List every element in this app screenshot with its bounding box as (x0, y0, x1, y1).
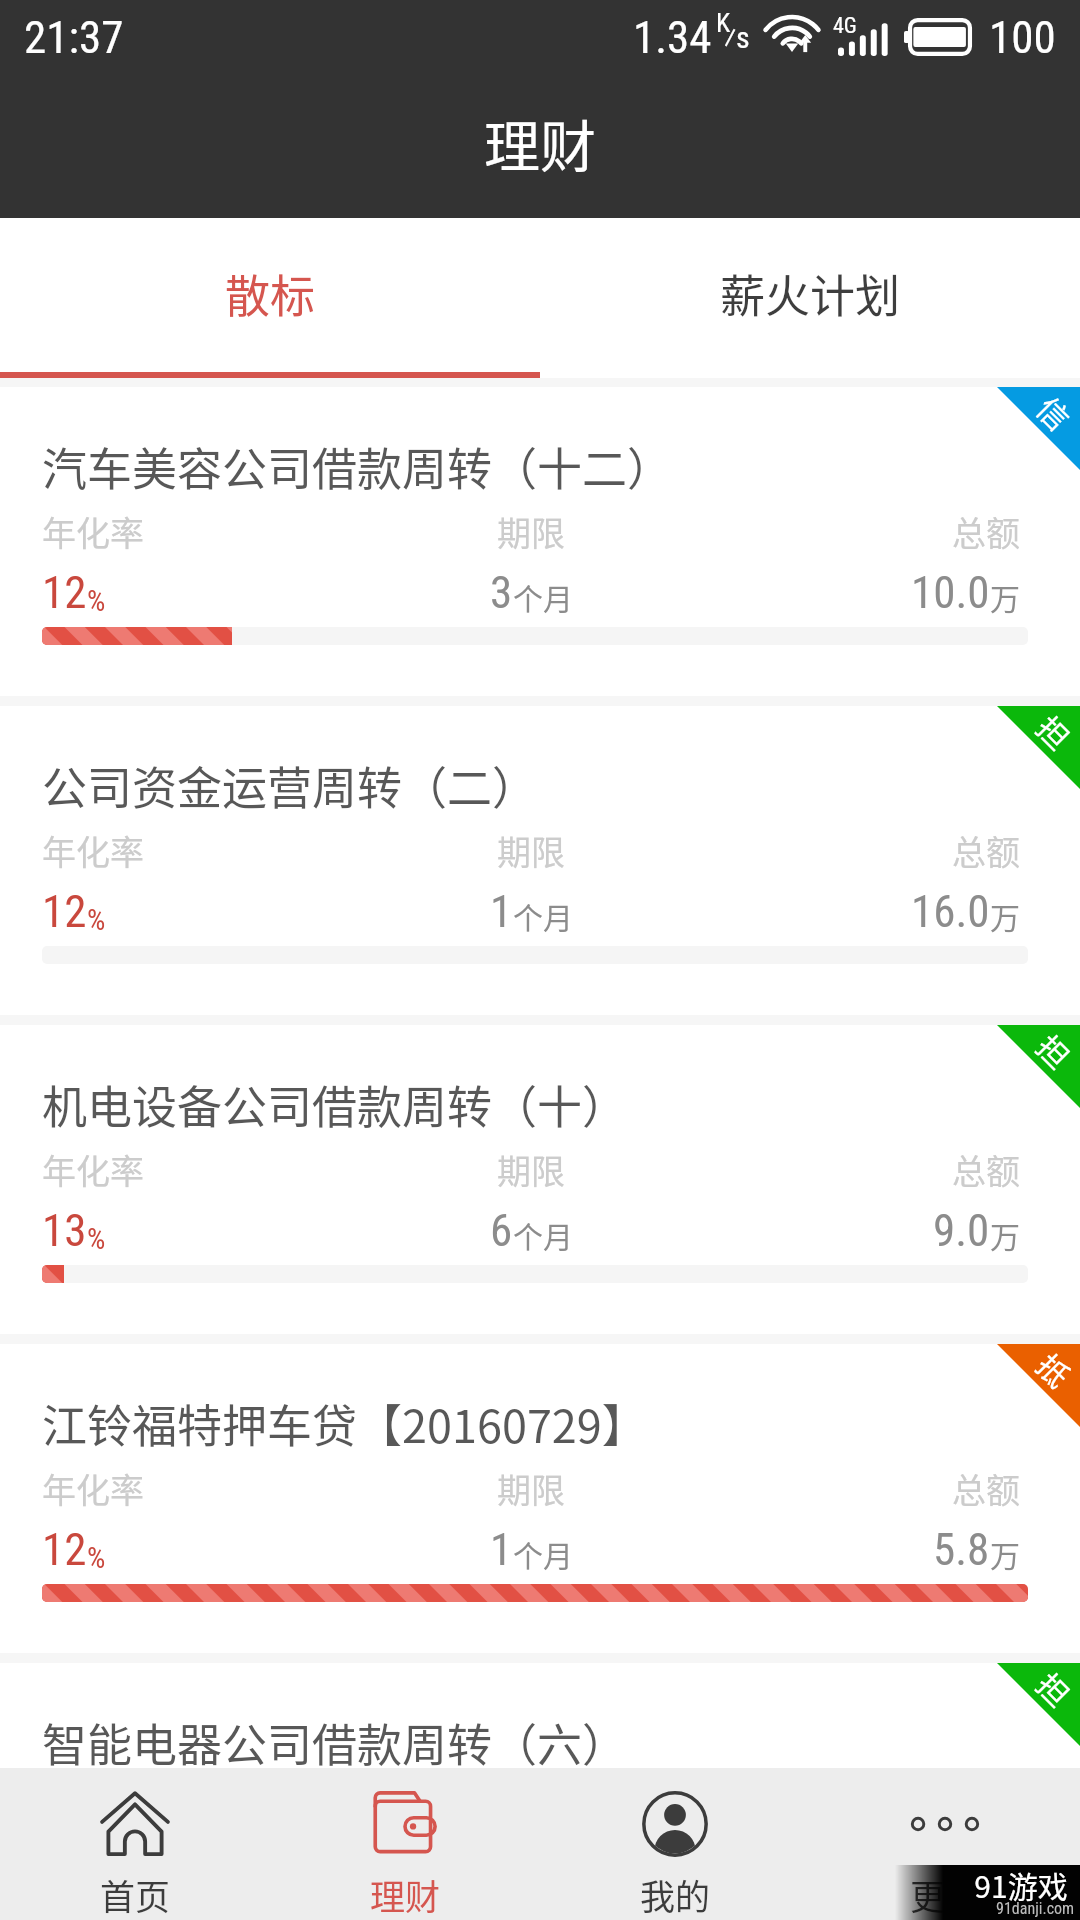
staticText: 总额 (952, 1145, 1020, 1194)
staticText: 16.0 (911, 885, 990, 938)
staticText: 个月 (513, 1532, 573, 1575)
staticText: 抵 (1028, 1343, 1080, 1396)
staticText: 理财 (370, 1869, 441, 1920)
staticText: 担 (1028, 1662, 1080, 1715)
staticText: 10.0 (911, 566, 990, 619)
staticText: % (87, 1541, 106, 1575)
staticText: 100 (989, 11, 1056, 64)
staticText: 12 (42, 566, 87, 619)
staticText: % (87, 1860, 106, 1894)
staticText: 总额 (952, 507, 1020, 556)
staticText: 年化率 (42, 1145, 144, 1194)
button[interactable]: 首页 (0, 1768, 270, 1920)
staticText: 总额 (952, 1783, 1020, 1832)
staticText: 信 (1028, 386, 1080, 439)
staticText: 8.0 (933, 1842, 990, 1895)
staticText: 万 (990, 575, 1020, 618)
staticText: 万 (990, 894, 1020, 937)
staticText: 更多 (910, 1869, 981, 1920)
staticText: 1.34 (633, 11, 712, 64)
button[interactable]: 薪火计划 (540, 218, 1080, 372)
staticText: 个月 (513, 1213, 573, 1256)
staticText: 期限 (497, 1464, 565, 1513)
button[interactable]: 江铃福特押车贷【20160729】 (0, 1344, 1080, 1653)
staticText: 期限 (497, 826, 565, 875)
staticText: 期限 (497, 1145, 565, 1194)
staticText: 21:37 (24, 11, 124, 64)
staticText: 总额 (952, 826, 1020, 875)
staticText: 薪火计划 (720, 261, 901, 326)
staticText: % (87, 584, 106, 618)
staticText: 91danji.com (996, 1899, 1075, 1918)
other: 我的 (640, 1789, 710, 1859)
button[interactable]: 更多 (810, 1768, 1080, 1920)
staticText: 13 (42, 1204, 87, 1257)
button[interactable]: 汽车美容公司借款周转（十二） (0, 387, 1080, 696)
staticText: 总额 (952, 1464, 1020, 1513)
staticText: 年化率 (42, 1464, 144, 1513)
staticText: 期限 (497, 507, 565, 556)
other: Battery (904, 18, 976, 56)
other: 更多 (910, 1789, 980, 1859)
staticText: 1 (490, 885, 513, 938)
staticText: 年化率 (42, 1783, 144, 1832)
staticText: % (87, 903, 106, 937)
staticText: 汽车美容公司借款周转（十二） (42, 434, 673, 499)
staticText: 万 (990, 1213, 1020, 1256)
button[interactable]: 理财 (270, 1768, 540, 1920)
button[interactable]: 公司资金运营周转（二） (0, 706, 1080, 1015)
button[interactable]: 我的 (540, 1768, 810, 1920)
staticText: 3 (490, 566, 513, 619)
staticText: 万 (990, 1851, 1020, 1894)
staticText: 我的 (640, 1869, 711, 1920)
staticText: 6 (490, 1204, 513, 1257)
staticText: 5.8 (933, 1523, 990, 1576)
staticText: 年化率 (42, 826, 144, 875)
staticText: 担 (1028, 705, 1080, 758)
staticText: 12 (42, 885, 87, 938)
other: 首页 (100, 1789, 170, 1859)
staticText: 9.0 (933, 1204, 990, 1257)
staticText: ⁄s (724, 20, 750, 55)
staticText: 万 (990, 1532, 1020, 1575)
staticText: 年化率 (42, 507, 144, 556)
staticText: 1 (490, 1523, 513, 1576)
staticText: 理财 (484, 102, 596, 183)
staticText: 机电设备公司借款周转（十） (42, 1072, 628, 1137)
staticText: 公司资金运营周转（二） (42, 753, 538, 818)
button[interactable]: 智能电器公司借款周转（六） (0, 1663, 1080, 1768)
staticText: 个月 (513, 575, 573, 618)
staticText: 4G (833, 13, 857, 39)
staticText: K (716, 8, 731, 38)
staticText: 智能电器公司借款周转（六） (42, 1710, 628, 1775)
other: 理财 (370, 1789, 440, 1859)
staticText: 个月 (513, 894, 573, 937)
staticText: 散标 (225, 261, 316, 326)
other: Signal (838, 17, 890, 56)
staticText: 担 (1028, 1024, 1080, 1077)
staticText: 12 (42, 1523, 87, 1576)
button[interactable]: 散标 (0, 218, 540, 372)
staticText: 首页 (100, 1869, 171, 1920)
other: WiFi (766, 17, 818, 56)
staticText: % (87, 1222, 106, 1256)
button[interactable]: 机电设备公司借款周转（十） (0, 1025, 1080, 1334)
staticText: 江铃福特押车贷【20160729】 (42, 1391, 647, 1456)
staticText: 91游戏 (974, 1863, 1068, 1906)
